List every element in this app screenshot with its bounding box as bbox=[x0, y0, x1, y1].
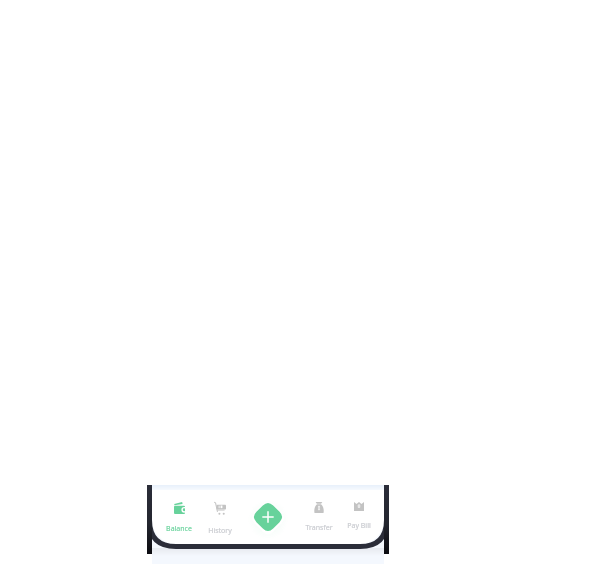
staticText: Balance bbox=[166, 524, 192, 534]
staticText: Pay Bill bbox=[347, 521, 371, 531]
button[interactable]: Transfer bbox=[297, 497, 341, 535]
staticText: Transfer bbox=[305, 523, 333, 533]
button[interactable]: History bbox=[198, 497, 242, 535]
button[interactable]: Add bbox=[247, 496, 289, 538]
button[interactable]: Pay Bill bbox=[337, 497, 381, 535]
staticText: History bbox=[208, 526, 232, 535]
button[interactable]: Balance bbox=[157, 497, 201, 535]
